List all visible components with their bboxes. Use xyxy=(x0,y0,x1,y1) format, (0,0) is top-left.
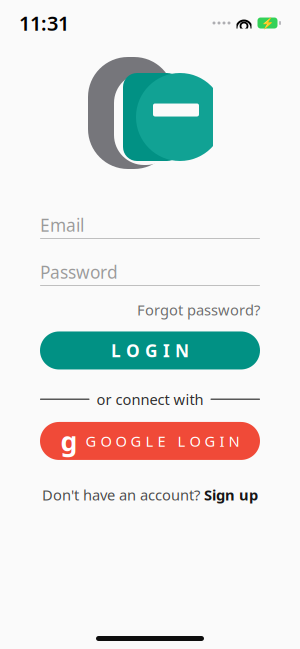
staticText: Password xyxy=(40,260,118,283)
button[interactable]: g xyxy=(40,422,260,460)
button[interactable]: L O G I N xyxy=(40,331,260,369)
staticText: Forgot password? xyxy=(137,300,260,319)
staticText: G O O G L E L O G I N xyxy=(85,431,239,451)
staticText: Sign up xyxy=(204,485,258,504)
staticText: ⚡ xyxy=(261,17,274,29)
staticText: L O G I N xyxy=(111,339,189,362)
button[interactable]: Don't have an account? xyxy=(42,481,258,508)
staticText: 11:31 xyxy=(19,10,69,36)
staticText: Don't have an account? xyxy=(42,485,200,504)
staticText: Email xyxy=(40,213,84,236)
staticText: g xyxy=(60,423,77,459)
button[interactable]: Forgot password? xyxy=(137,297,260,322)
staticText: or connect with xyxy=(96,389,203,409)
